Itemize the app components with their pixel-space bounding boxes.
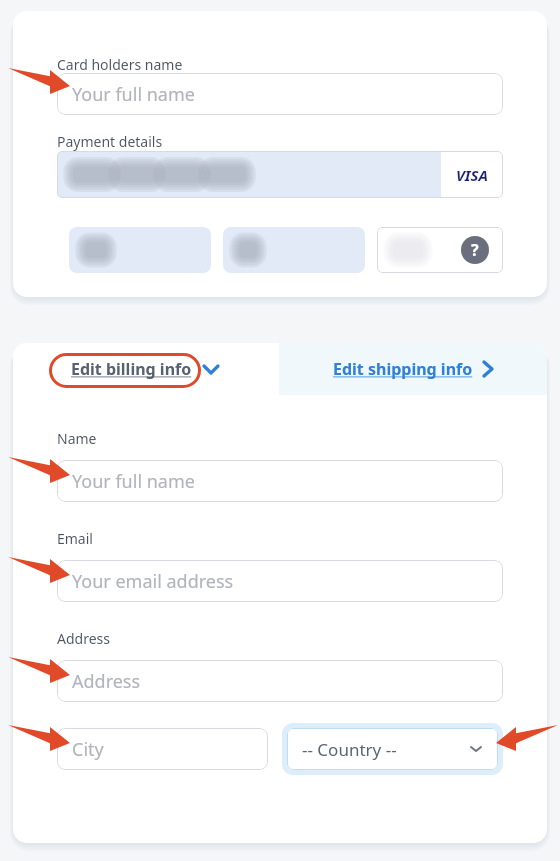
staticText: Edit billing info — [71, 358, 192, 380]
button[interactable]: VISA — [57, 151, 503, 198]
button[interactable]: What is the CVV code — [447, 227, 503, 273]
staticText: ? — [471, 239, 479, 261]
staticText: Your email address — [72, 569, 234, 594]
button[interactable]: -- Country -- — [287, 728, 498, 770]
staticText: Your full name — [72, 469, 195, 494]
button[interactable] — [223, 227, 365, 273]
button[interactable]: Edit billing info — [13, 343, 279, 395]
button[interactable]: Address — [57, 660, 503, 702]
staticText: VISA — [456, 165, 488, 185]
button[interactable]: Edit shipping info — [279, 343, 547, 395]
button[interactable]: Your full name — [57, 73, 503, 115]
staticText: Payment details — [57, 132, 163, 151]
button[interactable] — [69, 227, 211, 273]
staticText: Address — [57, 629, 110, 648]
staticText: Address — [72, 669, 141, 694]
button[interactable]: City — [57, 728, 268, 770]
button[interactable]: What is the CVV code — [377, 227, 503, 273]
button[interactable]: Your full name — [57, 460, 503, 502]
staticText: Email — [57, 529, 93, 548]
staticText: Edit shipping info — [333, 358, 473, 380]
staticText: Card holders name — [57, 55, 183, 74]
button[interactable]: Your email address — [57, 560, 503, 602]
staticText: Your full name — [72, 82, 195, 107]
staticText: -- Country -- — [302, 738, 397, 761]
staticText: City — [72, 737, 104, 762]
staticText: Name — [57, 429, 97, 448]
